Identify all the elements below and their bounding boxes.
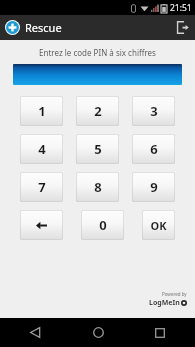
staticText: LogMeIn <box>149 298 180 308</box>
staticText: 5 <box>94 140 102 158</box>
staticText: Rescue <box>25 20 62 35</box>
staticText: Powered by <box>162 291 187 297</box>
staticText: 1 <box>38 102 46 120</box>
button[interactable]: Recent apps <box>143 318 177 347</box>
staticText: Entrez le code PIN à six chiffres <box>0 47 195 58</box>
staticText: 9 <box>150 178 158 196</box>
staticText: 0 <box>99 216 107 234</box>
button[interactable]: Log out <box>170 15 195 40</box>
button[interactable]: 0 <box>81 210 124 240</box>
button[interactable]: 6 <box>132 134 175 164</box>
button[interactable]: Backspace <box>20 210 63 240</box>
button[interactable]: 3 <box>132 96 175 126</box>
button[interactable]: 1 <box>20 96 63 126</box>
staticText: 7 <box>38 178 46 196</box>
staticText: 3 <box>150 102 158 120</box>
staticText: 2 <box>94 102 102 120</box>
staticText: OK <box>150 218 167 233</box>
button[interactable]: 8 <box>76 172 119 202</box>
button[interactable]: PIN entry field <box>13 64 182 85</box>
staticText: 6 <box>150 140 158 158</box>
button[interactable]: 2 <box>76 96 119 126</box>
staticText: 21:51 <box>170 2 192 14</box>
button[interactable]: 9 <box>132 172 175 202</box>
button[interactable]: 5 <box>76 134 119 164</box>
button[interactable]: 4 <box>20 134 63 164</box>
staticText: 8 <box>94 178 102 196</box>
button[interactable]: Home <box>81 318 115 347</box>
staticText: 4 <box>38 140 46 158</box>
button[interactable]: Back <box>18 318 52 347</box>
button[interactable]: OK <box>142 210 175 240</box>
button[interactable]: 7 <box>20 172 63 202</box>
